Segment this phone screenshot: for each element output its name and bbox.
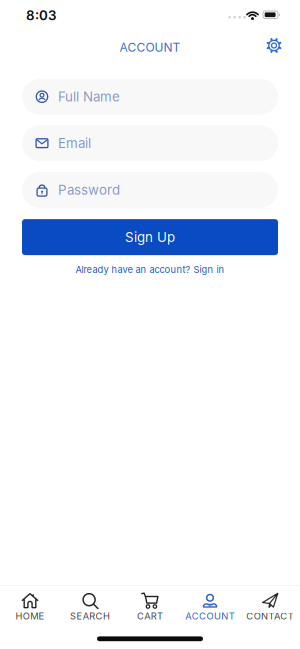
button[interactable]: SEARCH	[60, 592, 120, 622]
button[interactable]: Already have an account? Sign in	[75, 264, 224, 275]
staticText: Sign Up	[125, 229, 175, 245]
button[interactable]: ACCOUNT	[180, 592, 240, 622]
staticText: Email	[58, 135, 91, 151]
staticText: SEARCH	[70, 611, 110, 622]
staticText: Password	[58, 182, 120, 198]
staticText: ACCOUNT	[119, 40, 180, 55]
button[interactable]: Password	[22, 172, 278, 208]
staticText: Full Name	[58, 89, 120, 104]
button[interactable]: CONTACT	[240, 592, 300, 622]
staticText: CART	[137, 611, 163, 622]
button[interactable]	[265, 37, 282, 54]
staticText: Already have an account? Sign in	[75, 264, 224, 275]
staticText: HOME	[15, 611, 45, 622]
button[interactable]: Sign Up	[22, 219, 278, 255]
button[interactable]: Full Name	[22, 79, 278, 115]
button[interactable]: CART	[120, 592, 180, 622]
button[interactable]: Email	[22, 125, 278, 161]
staticText: CONTACT	[246, 611, 294, 622]
button[interactable]: HOME	[0, 592, 60, 622]
staticText: ACCOUNT	[185, 611, 235, 622]
staticText: 8:03	[26, 8, 56, 23]
